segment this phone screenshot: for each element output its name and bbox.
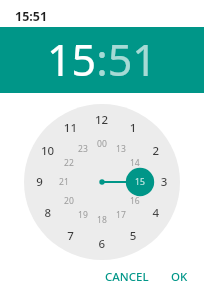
staticText: 15:51 bbox=[15, 8, 48, 25]
staticText: OK bbox=[171, 269, 188, 285]
button[interactable]: CANCEL bbox=[97, 265, 157, 289]
staticText: CANCEL bbox=[105, 269, 149, 285]
button[interactable]: OK bbox=[163, 265, 196, 289]
staticText: 15:51 bbox=[47, 30, 157, 89]
button[interactable]: Clock face, hour 15 selected bbox=[24, 104, 180, 260]
